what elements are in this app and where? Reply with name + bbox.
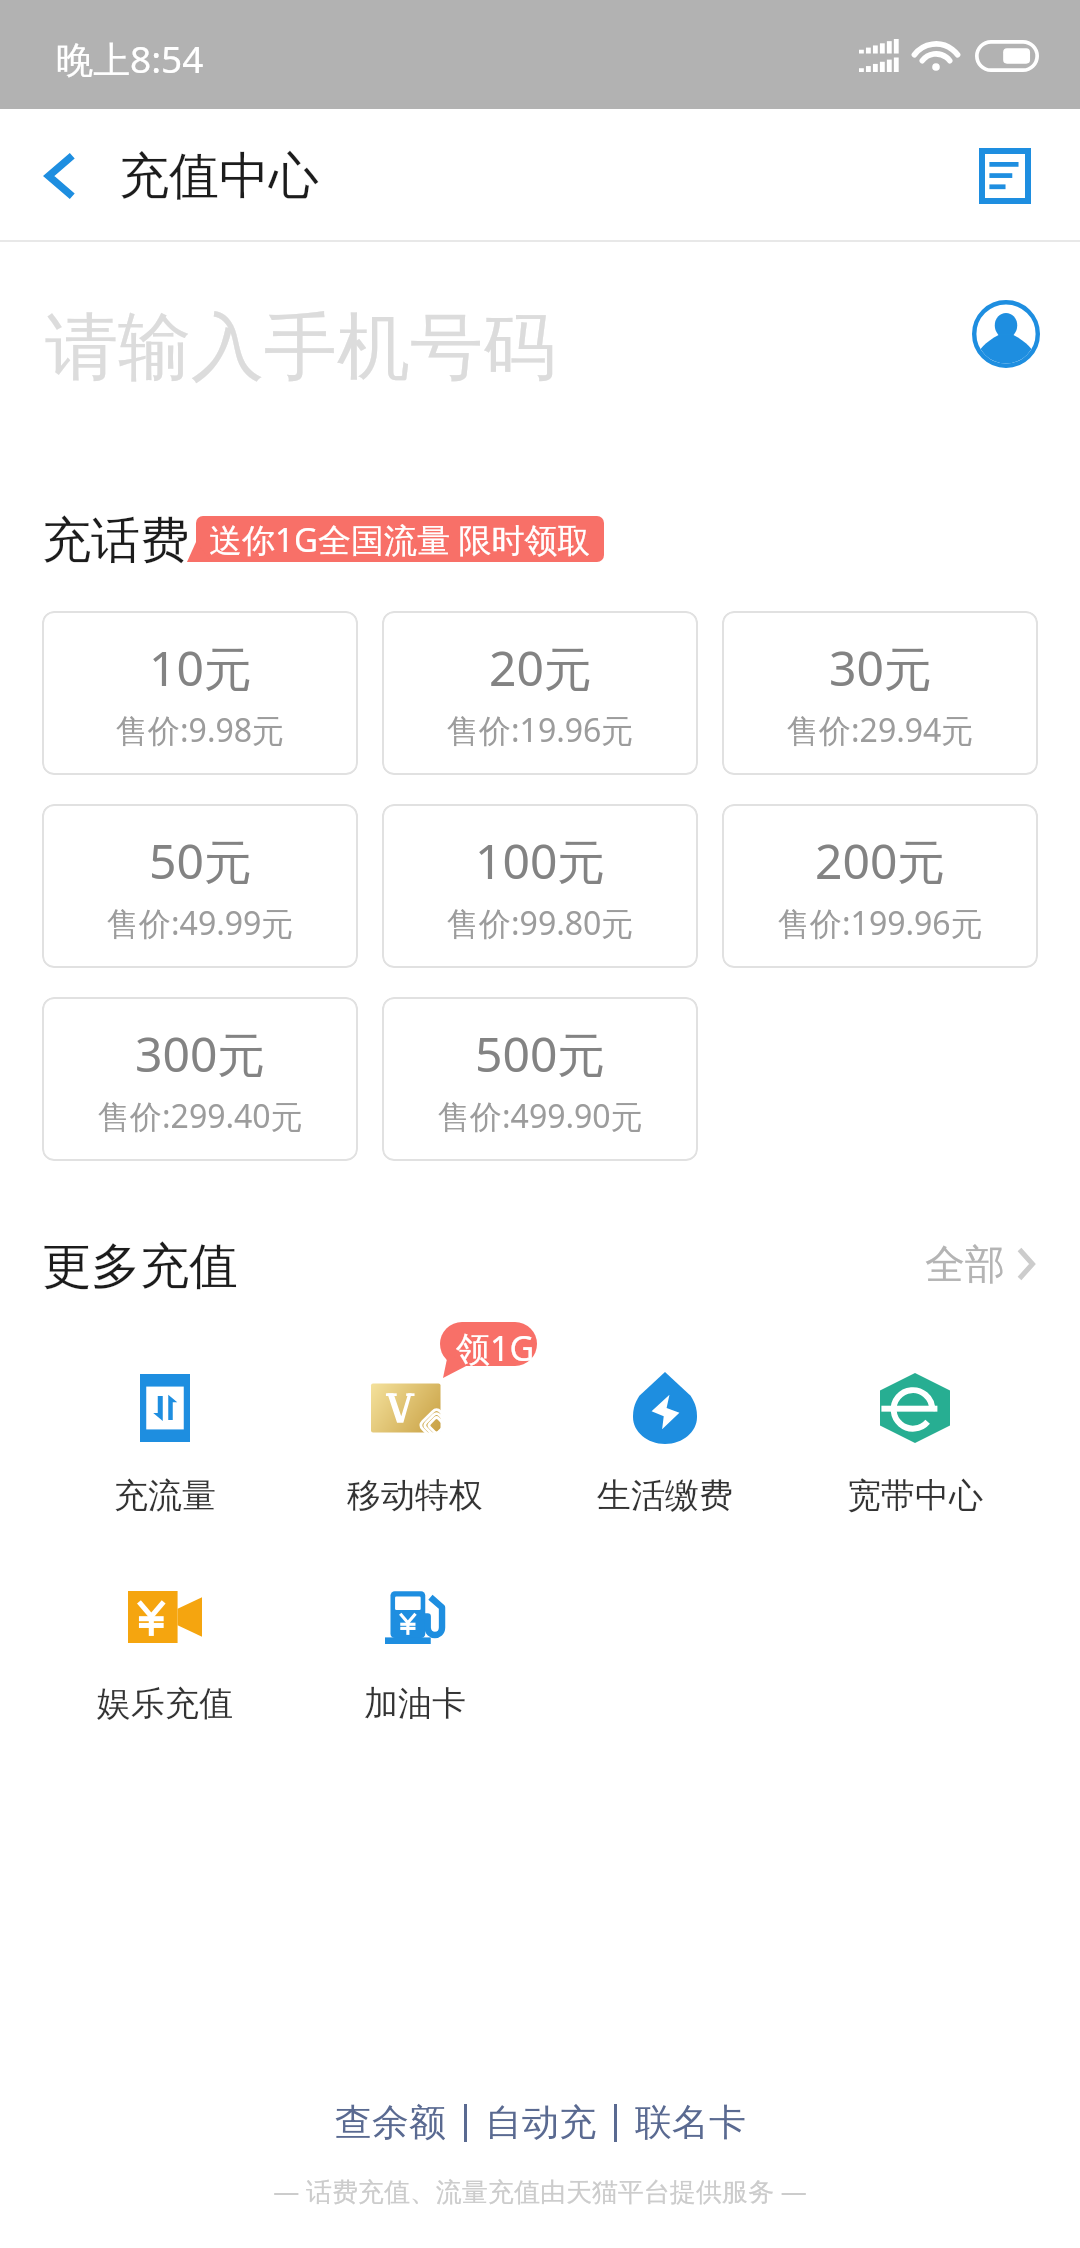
staticText: 售价:199.96元 xyxy=(778,901,983,945)
button[interactable]: 自动充 xyxy=(485,2099,596,2146)
staticText: 领1G xyxy=(456,1325,535,1371)
staticText: 晚上8:54 xyxy=(56,33,204,84)
button[interactable]: 10元 xyxy=(42,611,358,775)
button[interactable]: Records xyxy=(950,109,1060,242)
staticText: 50元 xyxy=(149,828,252,894)
button[interactable]: 50元 xyxy=(42,804,358,968)
button[interactable]: 娱乐充值 xyxy=(55,1556,275,1724)
button[interactable]: 300元 xyxy=(42,997,358,1161)
button[interactable]: 充流量 xyxy=(55,1348,275,1516)
button[interactable]: 200元 xyxy=(722,804,1038,968)
staticText: 加油卡 xyxy=(364,1682,466,1725)
staticText: 自动充 xyxy=(485,2099,596,2146)
staticText: 10元 xyxy=(149,635,252,701)
button[interactable]: 联名卡 xyxy=(635,2099,746,2146)
staticText: 更多充值 xyxy=(42,1236,238,1298)
staticText: 100元 xyxy=(475,828,606,894)
button[interactable]: 移动特权 xyxy=(305,1348,525,1516)
staticText: 娱乐充值 xyxy=(97,1682,233,1725)
staticText: — 话费充值、流量充值由天猫平台提供服务 — xyxy=(0,2173,1080,2209)
button[interactable]: Back xyxy=(10,109,110,242)
staticText: 售价:9.98元 xyxy=(116,708,285,752)
button[interactable]: 20元 xyxy=(382,611,698,775)
staticText: 售价:99.80元 xyxy=(447,901,634,945)
staticText: 充流量 xyxy=(114,1474,216,1517)
button[interactable]: 查余额 xyxy=(335,2099,446,2146)
staticText: 生活缴费 xyxy=(597,1474,733,1517)
staticText: 售价:299.40元 xyxy=(98,1094,303,1138)
staticText: 请输入手机号码 xyxy=(45,302,556,394)
staticText: 售价:29.94元 xyxy=(787,708,974,752)
staticText: 200元 xyxy=(815,828,946,894)
button[interactable]: Contacts xyxy=(972,300,1040,368)
staticText: 售价:49.99元 xyxy=(107,901,294,945)
button[interactable]: 500元 xyxy=(382,997,698,1161)
button[interactable]: 100元 xyxy=(382,804,698,968)
staticText: 售价:19.96元 xyxy=(447,708,634,752)
button[interactable]: 加油卡 xyxy=(305,1556,525,1724)
staticText: 20元 xyxy=(489,635,592,701)
staticText: 宽带中心 xyxy=(847,1474,983,1517)
staticText: 全部 xyxy=(925,1239,1005,1289)
staticText: 充话费 xyxy=(42,510,189,572)
button[interactable]: 宽带中心 xyxy=(805,1348,1025,1516)
staticText: 充值中心 xyxy=(119,145,319,208)
staticText: 售价:499.90元 xyxy=(438,1094,643,1138)
button[interactable]: 生活缴费 xyxy=(555,1348,775,1516)
button[interactable]: 送你1G全国流量 限时领取 xyxy=(209,516,591,562)
button[interactable]: 30元 xyxy=(722,611,1038,775)
staticText: 移动特权 xyxy=(347,1474,483,1517)
staticText: 查余额 xyxy=(335,2099,446,2146)
staticText: 300元 xyxy=(135,1021,266,1087)
staticText: 送你1G全国流量 限时领取 xyxy=(209,517,591,562)
button[interactable]: 全部 xyxy=(925,1234,1035,1294)
staticText: 30元 xyxy=(829,635,932,701)
staticText: 500元 xyxy=(475,1021,606,1087)
staticText: 联名卡 xyxy=(635,2099,746,2146)
